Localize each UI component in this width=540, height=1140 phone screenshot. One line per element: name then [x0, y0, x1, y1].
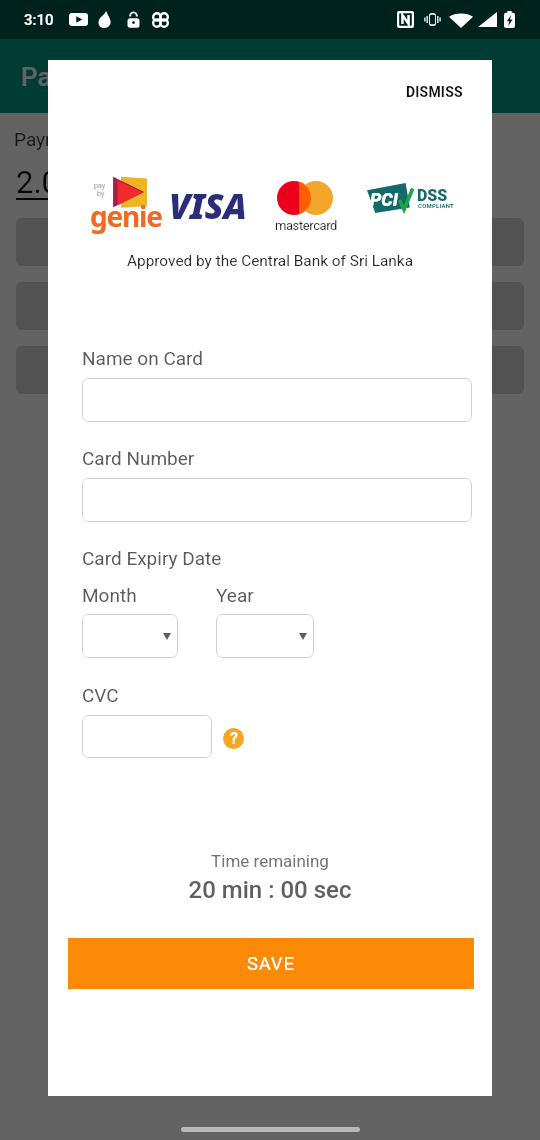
button[interactable]: Select: [82, 614, 178, 658]
staticText: genie: [90, 197, 162, 235]
staticText: Payment: [21, 62, 124, 92]
staticText: 3:10: [24, 11, 54, 29]
staticText: Month: [82, 584, 137, 606]
staticText: Card Number: [82, 447, 195, 469]
staticText: CVC: [82, 684, 119, 706]
button[interactable]: Select: [216, 614, 314, 658]
button[interactable]: DISMISS: [388, 72, 481, 112]
staticText: Year: [216, 584, 254, 606]
staticText: Time remaining: [48, 851, 492, 871]
button[interactable]: Text field: [82, 478, 472, 522]
staticText: mastercard: [271, 218, 341, 233]
staticText: Payment Amount: [14, 128, 161, 150]
staticText: Name on Card: [82, 347, 204, 369]
button[interactable]: Text field: [82, 715, 212, 758]
staticText: PCI: [370, 189, 399, 210]
staticText: Approved by the Central Bank of Sri Lank…: [48, 252, 492, 270]
staticText: COMPLIANT: [418, 202, 454, 209]
staticText: Card Expiry Date: [82, 547, 222, 569]
button[interactable]: Text field: [82, 378, 472, 422]
staticText: DISMISS: [406, 84, 463, 100]
button[interactable]: SAVE: [68, 938, 474, 989]
button[interactable]: Help about CVC: [223, 728, 244, 749]
staticText: by: [97, 190, 105, 198]
staticText: 20 min : 00 sec: [48, 876, 492, 904]
staticText: 2.00: [16, 164, 77, 200]
staticText: DSS: [417, 186, 448, 205]
staticText: pay: [94, 182, 105, 190]
staticText: VISA: [169, 182, 247, 230]
staticText: ?: [230, 729, 238, 748]
staticText: SAVE: [247, 953, 295, 975]
